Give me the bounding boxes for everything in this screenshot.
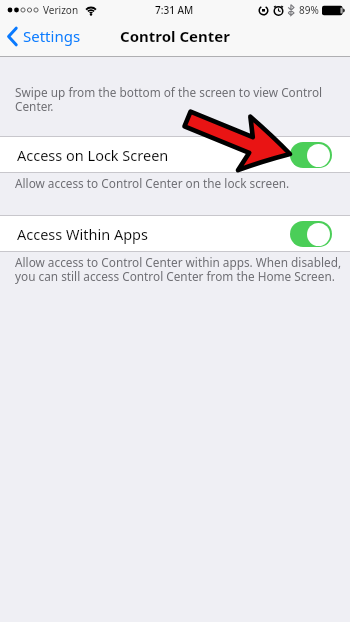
button[interactable]: Access on Lock Screen [0,137,350,172]
staticText: Allow access to Control Center on the lo… [15,175,290,191]
staticText: Settings [23,26,81,46]
button[interactable] [290,221,332,247]
button[interactable] [290,142,332,168]
staticText: 89% [299,3,319,17]
staticText: 7:31 AM [155,3,194,17]
button[interactable]: Access Within Apps [0,216,350,251]
button[interactable]: Settings [7,26,81,46]
staticText: Access on Lock Screen [17,145,169,165]
staticText: Verizon [43,3,79,17]
staticText: Control Center [120,26,230,46]
staticText: Access Within Apps [17,224,148,244]
staticText: Allow access to Control Center within ap… [15,254,342,284]
staticText: Swipe up from the bottom of the screen t… [15,84,323,114]
